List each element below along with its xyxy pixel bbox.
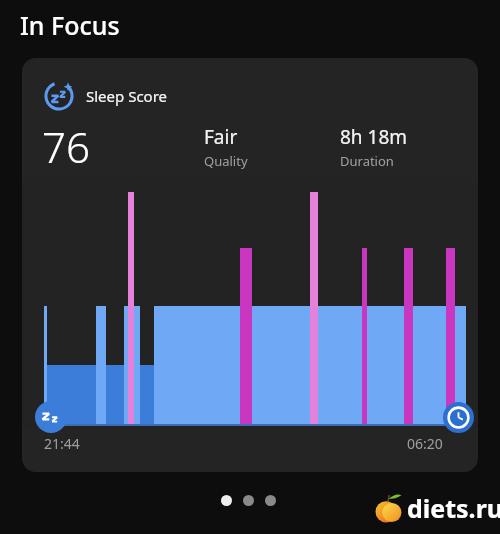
staticText: In Focus (20, 8, 120, 42)
staticText: diets.ru (407, 491, 500, 525)
other: Sleep (44, 81, 74, 111)
staticText: 76 (42, 118, 90, 175)
button[interactable]: Page 2 (243, 495, 254, 506)
button[interactable]: Wake time (443, 402, 474, 433)
staticText: Sleep Score (86, 86, 168, 106)
button[interactable]: Page 1 (221, 495, 232, 506)
button[interactable]: Page 3 (265, 495, 276, 506)
staticText: Quality (204, 152, 248, 170)
staticText: Duration (340, 152, 394, 170)
staticText: 8h 18m (340, 124, 408, 150)
staticText: 06:20 (407, 434, 457, 453)
staticText: Fair (204, 124, 238, 150)
button[interactable]: Sleep start (35, 401, 67, 433)
staticText: 21:44 (44, 434, 80, 453)
button[interactable]: Sleep (22, 58, 478, 472)
